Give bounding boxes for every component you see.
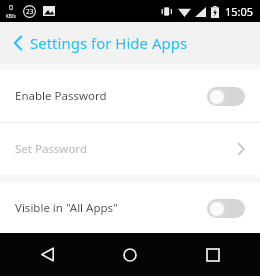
staticText: 0	[9, 3, 14, 13]
staticText: KB/s	[6, 13, 16, 19]
button[interactable]: Back	[0, 22, 260, 64]
staticText: 23	[26, 7, 34, 16]
button[interactable]: Back	[24, 233, 70, 276]
staticText: Visible in "All Apps"	[15, 200, 207, 216]
button[interactable]: Home	[107, 233, 153, 276]
button[interactable]: Enable Password	[0, 70, 260, 122]
other: Back	[13, 34, 23, 52]
button[interactable]: Visible in "All Apps"	[0, 183, 260, 233]
other: Open	[237, 142, 245, 156]
button[interactable]: Recent apps	[190, 233, 236, 276]
staticText: Enable Password	[15, 88, 207, 104]
button[interactable]: Set Password	[0, 123, 260, 175]
staticText: Settings for Hide Apps	[30, 33, 188, 53]
staticText: Set Password	[15, 141, 237, 157]
staticText: 15:05	[225, 4, 254, 19]
